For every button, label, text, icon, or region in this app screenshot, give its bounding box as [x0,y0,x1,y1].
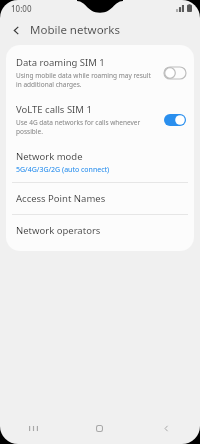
staticText: 10:00 [11,3,32,14]
staticText: Mobile networks [30,22,121,38]
button[interactable]: VoLTE calls SIM 1 [6,96,194,143]
staticText: Access Point Names [16,192,106,205]
button[interactable]: Data roaming SIM 1 [6,49,194,96]
button[interactable]: Network operators [6,215,194,246]
button[interactable]: Access Point Names [6,183,194,214]
button[interactable]: On [164,114,186,126]
staticText: 5G/4G/3G/2G (auto connect) [16,165,110,175]
staticText: Network operators [16,224,101,237]
staticText: VoLTE calls SIM 1 [16,103,92,116]
button[interactable]: Home [66,412,133,444]
button[interactable]: Back [133,412,200,444]
button[interactable]: Recent apps [0,412,66,444]
button[interactable]: Network mode [6,143,194,182]
button[interactable]: Off [164,67,186,79]
staticText: Use 4G data networks for calls whenever … [16,118,158,136]
staticText: Network mode [16,150,83,163]
staticText: Using mobile data while roaming may resu… [16,71,158,89]
button[interactable]: Back [6,20,26,40]
staticText: Data roaming SIM 1 [16,56,105,69]
